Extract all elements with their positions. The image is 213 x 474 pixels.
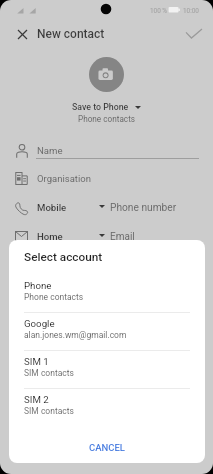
button[interactable]: Google [9, 318, 205, 356]
button[interactable]: SIM 2 [9, 394, 205, 432]
button[interactable]: Add photo [89, 57, 124, 92]
staticText: Phone number [110, 202, 177, 214]
staticText: Save to Phone [72, 102, 129, 112]
button[interactable]: Save contact [180, 20, 207, 47]
staticText: Select account [24, 250, 103, 264]
staticText: SIM 2 [24, 394, 49, 405]
button[interactable]: SIM 1 [9, 356, 205, 394]
staticText: Phone contacts [78, 114, 136, 124]
staticText: SIM contacts [24, 406, 74, 416]
staticText: New contact [37, 27, 105, 41]
button[interactable]: Close [9, 21, 35, 47]
staticText: Google [24, 318, 55, 329]
staticText: 10:00 [183, 7, 199, 15]
button[interactable]: Phone [9, 280, 205, 318]
staticText: Organisation [37, 173, 91, 184]
staticText: Phone [24, 280, 52, 291]
staticText: SIM 1 [24, 356, 49, 367]
staticText: Phone contacts [24, 292, 84, 302]
staticText: alan.jones.wm@gmail.com [24, 330, 127, 340]
staticText: Mobile [37, 202, 67, 213]
staticText: 100 % [150, 7, 168, 15]
staticText: Name [37, 145, 63, 156]
staticText: CANCEL [89, 442, 125, 453]
staticText: SIM contacts [24, 368, 74, 378]
button[interactable]: Save to Phone [0, 102, 213, 112]
staticText: Home [37, 231, 63, 242]
button[interactable]: CANCEL [80, 438, 134, 457]
staticText: Email [110, 231, 135, 243]
